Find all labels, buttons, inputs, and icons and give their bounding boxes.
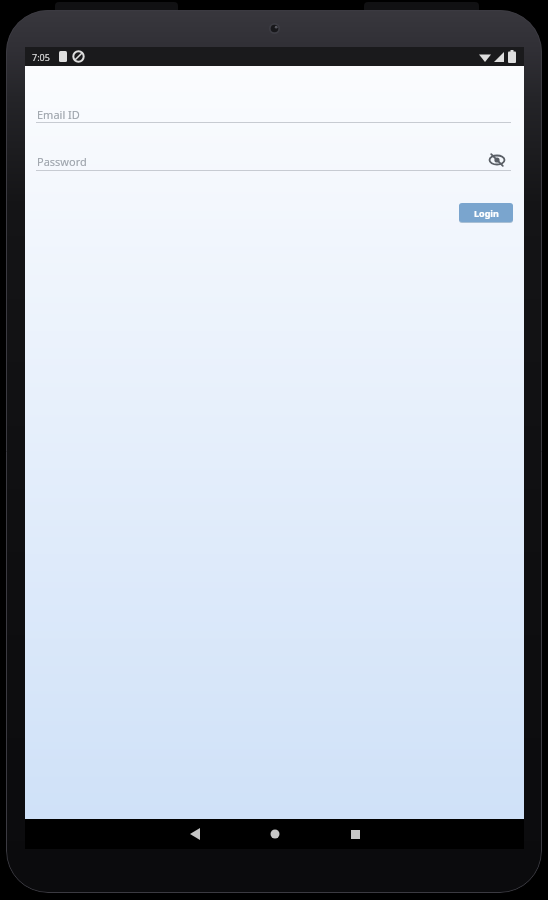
staticText: Password [37,154,87,169]
button[interactable]: Login [459,203,513,222]
button[interactable] [335,819,375,849]
staticText: 7:05 [32,51,50,63]
button[interactable]: Password [36,149,511,171]
button[interactable] [485,148,509,172]
button[interactable] [175,819,215,849]
button[interactable] [255,819,295,849]
staticText: Login [474,207,499,219]
staticText: Email ID [37,107,80,122]
button[interactable]: Email ID [36,102,511,123]
